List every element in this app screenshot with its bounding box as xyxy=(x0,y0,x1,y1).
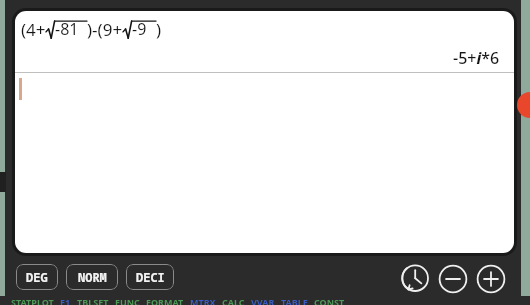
staticText: TBLSET xyxy=(77,296,109,305)
staticText: -5+i*6 xyxy=(453,47,500,69)
staticText: FORMAT xyxy=(146,296,184,305)
button[interactable]: CALC xyxy=(222,296,245,305)
staticText: CONST xyxy=(314,296,345,305)
staticText: )-(9+ xyxy=(87,18,123,41)
staticText: NORM xyxy=(78,269,107,285)
staticText: -81 xyxy=(55,18,79,40)
staticText: DECI xyxy=(136,269,165,285)
staticText: (4+ xyxy=(21,18,46,41)
button[interactable]: DEG xyxy=(16,264,58,290)
staticText: TABLE xyxy=(281,296,308,305)
button[interactable]: History xyxy=(398,263,430,295)
button[interactable]: VVAR xyxy=(251,296,275,305)
button[interactable]: (4+ xyxy=(15,11,514,253)
staticText: FUNC xyxy=(115,296,140,305)
staticText: DEG xyxy=(26,269,48,285)
staticText: STATPLOT xyxy=(11,296,54,305)
button[interactable]: TABLE xyxy=(281,296,308,305)
button[interactable]: STATPLOT xyxy=(11,296,54,305)
button[interactable]: FUNC xyxy=(115,296,140,305)
button[interactable]: Zoom in xyxy=(476,264,506,294)
staticText: VVAR xyxy=(251,296,275,305)
button[interactable]: TBLSET xyxy=(77,296,109,305)
button[interactable]: NORM xyxy=(66,264,118,290)
button[interactable]: CONST xyxy=(314,296,345,305)
staticText: F1 xyxy=(60,296,71,305)
staticText: MTRX xyxy=(190,296,216,305)
staticText: CALC xyxy=(222,296,245,305)
staticText: -9 xyxy=(132,18,147,40)
button[interactable]: Zoom out xyxy=(438,264,468,294)
button[interactable]: MTRX xyxy=(190,296,216,305)
button[interactable]: DECI xyxy=(126,264,174,290)
button[interactable]: F1 xyxy=(60,296,71,305)
button[interactable]: FORMAT xyxy=(146,296,184,305)
staticText: ) xyxy=(156,18,162,41)
